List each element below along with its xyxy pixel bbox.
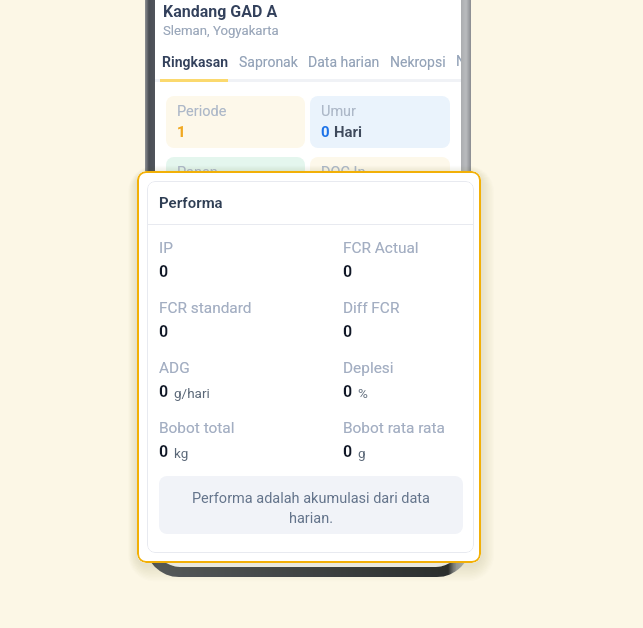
staticText: DOC In: [321, 164, 366, 181]
button[interactable]: Umur: [310, 96, 450, 148]
staticText: Diff FCR: [343, 299, 400, 317]
staticText: 0: [321, 123, 330, 141]
button[interactable]: Panen: [166, 157, 305, 209]
staticText: %: [358, 385, 368, 401]
button[interactable]: Nekropsi: [390, 54, 446, 70]
staticText: kg: [174, 445, 189, 461]
staticText: Data harian: [308, 54, 380, 70]
staticText: Sapronak: [239, 54, 298, 70]
staticText: g: [358, 445, 366, 461]
button[interactable]: DOC In: [310, 157, 450, 209]
staticText: Performa: [159, 194, 223, 212]
button[interactable]: Ringkasan: [162, 54, 229, 70]
staticText: Periode: [177, 103, 227, 120]
button[interactable]: Periode: [166, 96, 305, 148]
button[interactable]: Sapronak: [239, 54, 298, 70]
staticText: FCR Actual: [343, 239, 419, 257]
staticText: Deplesi: [343, 359, 394, 377]
staticText: Performa adalah akumulasi dari data hari…: [185, 490, 437, 527]
staticText: 0: [343, 382, 353, 401]
staticText: Sleman, Yogyakarta: [163, 23, 279, 38]
staticText: g/hari: [174, 385, 210, 401]
button[interactable]: Nutrisi: [456, 53, 461, 71]
button[interactable]: Data harian: [308, 54, 380, 70]
staticText: Panen: [177, 164, 218, 181]
staticText: 0: [177, 184, 186, 202]
staticText: Kandang GAD A: [163, 2, 278, 21]
staticText: Umur: [321, 103, 357, 120]
staticText: 0: [343, 262, 353, 281]
staticText: ADG: [159, 359, 190, 377]
staticText: Bobot total: [159, 419, 235, 437]
staticText: 0: [159, 442, 169, 461]
staticText: 0: [159, 262, 169, 281]
staticText: 0: [159, 322, 169, 341]
staticText: Nutrisi: [456, 53, 461, 71]
staticText: Bobot rata rata: [343, 419, 445, 437]
staticText: Ringkasan: [162, 54, 229, 70]
staticText: 0: [343, 442, 353, 461]
staticText: FCR standard: [159, 299, 252, 317]
staticText: 0: [159, 382, 169, 401]
staticText: IP: [159, 239, 173, 257]
staticText: Nekropsi: [390, 54, 446, 70]
staticText: Hari: [334, 123, 363, 141]
staticText: 1: [177, 123, 186, 141]
staticText: 0: [343, 322, 353, 341]
